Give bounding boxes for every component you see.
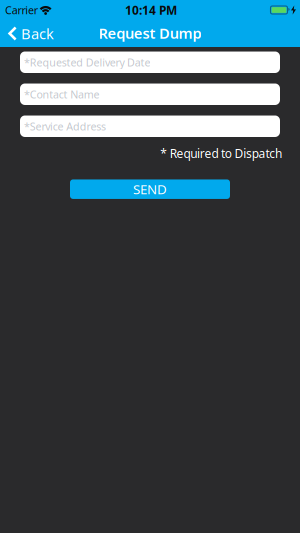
staticText: Back [21, 24, 54, 43]
staticText: Carrier [5, 3, 38, 17]
staticText: * Required to Dispatch [160, 145, 282, 161]
staticText: SEND [133, 180, 167, 198]
button[interactable]: SEND [70, 179, 230, 199]
button[interactable]: *Service Address [20, 115, 280, 137]
button[interactable]: *Contact Name [20, 83, 280, 105]
button[interactable]: Back [0, 20, 54, 47]
staticText: *Service Address [24, 119, 106, 133]
staticText: *Requested Delivery Date [24, 55, 150, 69]
staticText: Request Dump [99, 23, 201, 43]
staticText: 10:14 PM [125, 2, 177, 18]
staticText: *Contact Name [24, 87, 100, 101]
button[interactable]: *Requested Delivery Date [20, 51, 280, 73]
